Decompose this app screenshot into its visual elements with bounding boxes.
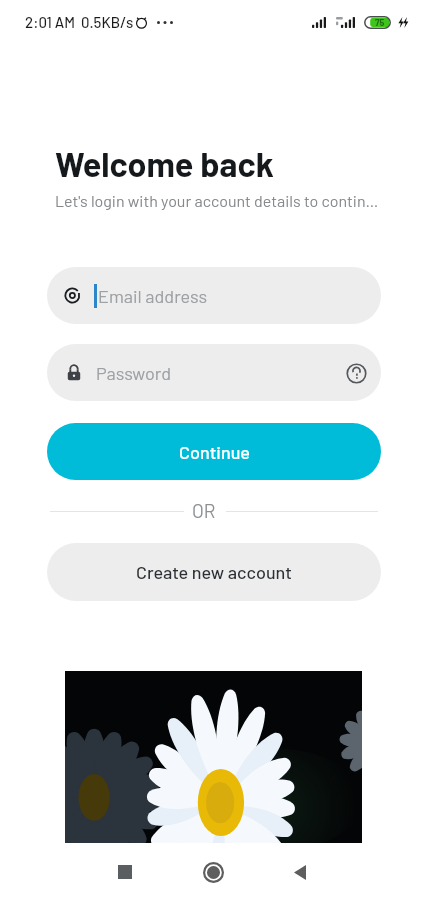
button[interactable]: Password xyxy=(47,344,381,401)
staticText: Password xyxy=(96,362,172,384)
staticText: OR xyxy=(192,499,216,522)
button[interactable]: Create new account xyxy=(47,543,381,601)
button[interactable]: Email address xyxy=(47,267,381,324)
button[interactable]: Help xyxy=(342,359,370,387)
button[interactable]: Recent apps xyxy=(108,855,142,889)
staticText: Let's login with your account details to… xyxy=(55,191,379,210)
staticText: 2:01 AM xyxy=(25,13,75,31)
button[interactable]: Home xyxy=(196,855,230,889)
staticText: 0.5KB/s xyxy=(81,13,134,31)
staticText: Continue xyxy=(179,441,250,463)
button[interactable]: Back xyxy=(283,855,317,889)
staticText: Email address xyxy=(98,285,208,307)
staticText: 75 xyxy=(375,17,385,28)
button[interactable]: Continue xyxy=(47,423,381,480)
staticText: Welcome back xyxy=(55,143,274,184)
staticText: Create new account xyxy=(136,561,292,583)
